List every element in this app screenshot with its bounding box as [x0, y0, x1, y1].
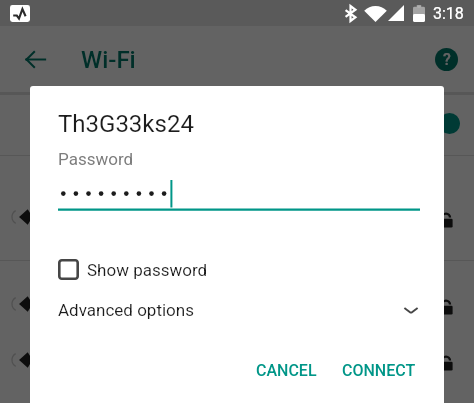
staticText: Wi-Fi [81, 46, 136, 74]
staticText: Th3G33ks24 [48, 201, 145, 221]
button[interactable]: Show password [52, 253, 216, 286]
button[interactable]: CANCEL [246, 351, 327, 390]
staticText: CONNECT [342, 361, 416, 380]
staticText: Show password [87, 260, 208, 280]
staticText: 3:18 [433, 4, 464, 23]
staticText: Advanced options [58, 300, 194, 320]
staticText: Wi-Fi networks [42, 164, 136, 180]
button[interactable]: Linksys0042 [0, 391, 474, 403]
button[interactable]: On [0, 92, 474, 155]
staticText: CANCEL [256, 361, 317, 380]
staticText: Password [58, 149, 134, 169]
button[interactable]: Advanced options [30, 293, 444, 327]
button[interactable]: CONNECT [332, 351, 426, 390]
button[interactable]: ATT-WIFI-2032 [0, 335, 474, 391]
button[interactable]: Back [11, 35, 59, 83]
staticText: Th3G33ks24 [58, 110, 194, 138]
button[interactable]: Th3G33ks24 [0, 192, 474, 248]
button[interactable]: NETGEAR58 [0, 279, 474, 335]
staticText: On [42, 114, 64, 134]
button[interactable]: Help [422, 35, 470, 83]
staticText: NETGEAR58 [48, 296, 142, 316]
staticText: ? [443, 50, 451, 69]
button[interactable]: Password field [58, 178, 420, 218]
